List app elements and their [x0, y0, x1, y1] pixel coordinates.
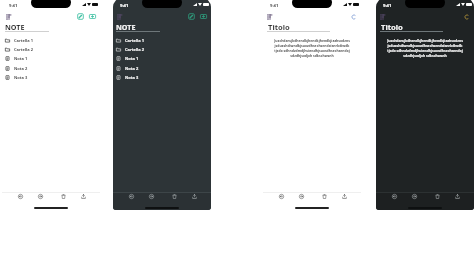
button[interactable]: New note — [77, 13, 84, 20]
button[interactable]: Cartella 2 — [116, 45, 176, 53]
staticText: NOTE — [116, 22, 136, 32]
button[interactable]: Nota 2 — [116, 64, 176, 72]
button[interactable]: Cartella 1 — [116, 36, 176, 44]
button[interactable]: Export — [189, 191, 199, 201]
button[interactable]: Undo — [276, 191, 286, 201]
button[interactable]: Undo — [15, 191, 25, 201]
button[interactable]: Delete — [169, 191, 179, 201]
staticText: Titolo — [381, 22, 403, 32]
button[interactable]: Menu — [380, 14, 386, 20]
button[interactable]: Nota 2 — [5, 64, 65, 72]
staticText: Cartella 2 — [125, 47, 144, 52]
button[interactable]: Delete — [319, 191, 329, 201]
staticText: Juxchdznsjkdhendkjhendkjhendkjiazhsodzns… — [387, 38, 463, 58]
staticText: 9:41 — [9, 3, 18, 9]
staticText: 9:41 — [270, 3, 279, 9]
button[interactable]: Undo — [389, 191, 399, 201]
staticText: Nota 2 — [125, 66, 139, 71]
button[interactable]: Menu — [267, 14, 273, 20]
button[interactable]: Redo — [409, 191, 419, 201]
button[interactable]: Delete — [58, 191, 68, 201]
button[interactable]: Redo — [146, 191, 156, 201]
button[interactable]: New folder — [89, 13, 96, 20]
button[interactable]: Cartella 2 — [5, 45, 65, 53]
button[interactable]: Delete — [432, 191, 442, 201]
staticText: Nota 1 — [14, 56, 28, 61]
button[interactable]: Redo — [296, 191, 306, 201]
staticText: 9:41 — [383, 3, 392, 9]
button[interactable]: Export — [78, 191, 88, 201]
button[interactable]: Toggle theme — [351, 14, 357, 20]
staticText: Cartella 2 — [14, 47, 33, 52]
staticText: Cartella 1 — [14, 38, 33, 43]
button[interactable]: Undo — [126, 191, 136, 201]
staticText: 9:41 — [120, 3, 129, 9]
button[interactable]: Toggle theme — [464, 14, 470, 20]
button[interactable]: Export — [339, 191, 349, 201]
staticText: NOTE — [5, 22, 25, 32]
button[interactable]: Nota 1 — [116, 54, 176, 62]
button[interactable]: Export — [452, 191, 462, 201]
staticText: Nota 3 — [14, 75, 28, 80]
button[interactable]: Sort — [6, 14, 12, 20]
button[interactable]: Nota 1 — [5, 54, 65, 62]
button[interactable]: New note — [188, 13, 195, 20]
staticText: Nota 2 — [14, 66, 28, 71]
staticText: Titolo — [268, 22, 290, 32]
button[interactable]: Redo — [35, 191, 45, 201]
staticText: Juxchdznsjkdhendkjhendkjhendkjiazhsodzns… — [274, 38, 350, 58]
button[interactable]: Cartella 1 — [5, 36, 65, 44]
button[interactable]: Nota 3 — [5, 73, 65, 81]
button[interactable]: Nota 3 — [116, 73, 176, 81]
staticText: Cartella 1 — [125, 38, 144, 43]
button[interactable]: New folder — [200, 13, 207, 20]
button[interactable]: Sort — [117, 14, 123, 20]
staticText: Nota 3 — [125, 75, 139, 80]
staticText: Nota 1 — [125, 56, 139, 61]
